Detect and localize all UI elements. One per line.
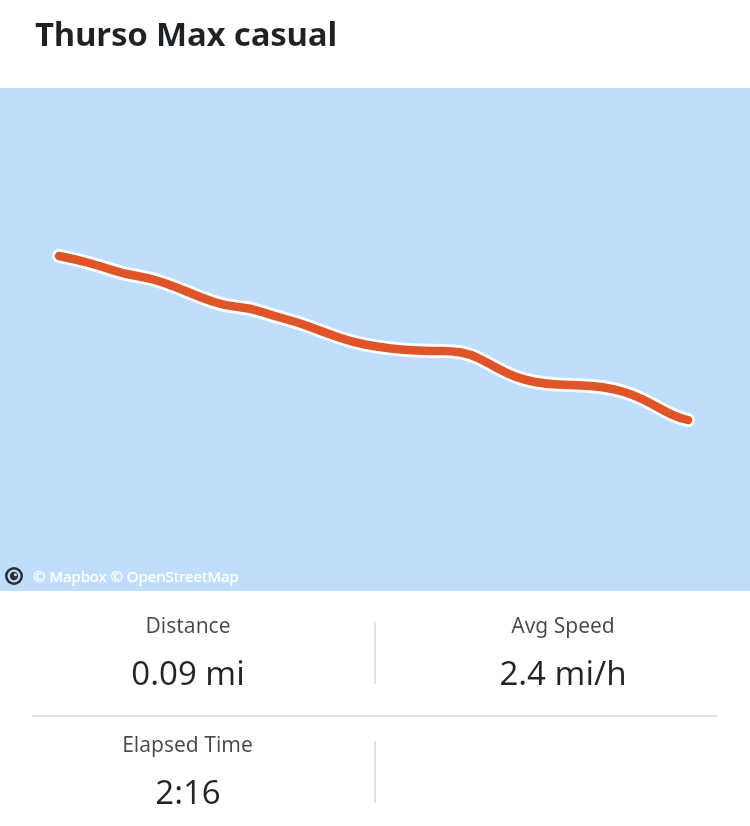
staticText: Thurso Max casual	[35, 11, 338, 56]
button[interactable]: Distance	[0, 591, 375, 715]
staticText: 2:16	[155, 769, 221, 814]
button[interactable]: Elapsed Time	[0, 717, 375, 826]
staticText: © Mapbox © OpenStreetMap	[33, 566, 239, 586]
staticText: Avg Speed	[511, 611, 615, 640]
staticText: Distance	[145, 611, 231, 640]
staticText: 2.4 mi/h	[499, 650, 627, 695]
staticText: Elapsed Time	[122, 730, 253, 759]
button[interactable]: Route map	[0, 88, 750, 591]
button[interactable]: Thurso Max casual	[0, 0, 750, 88]
staticText: 0.09 mi	[131, 650, 245, 695]
button[interactable]: Avg Speed	[375, 591, 750, 715]
button[interactable]: Mapbox logo	[5, 567, 23, 585]
